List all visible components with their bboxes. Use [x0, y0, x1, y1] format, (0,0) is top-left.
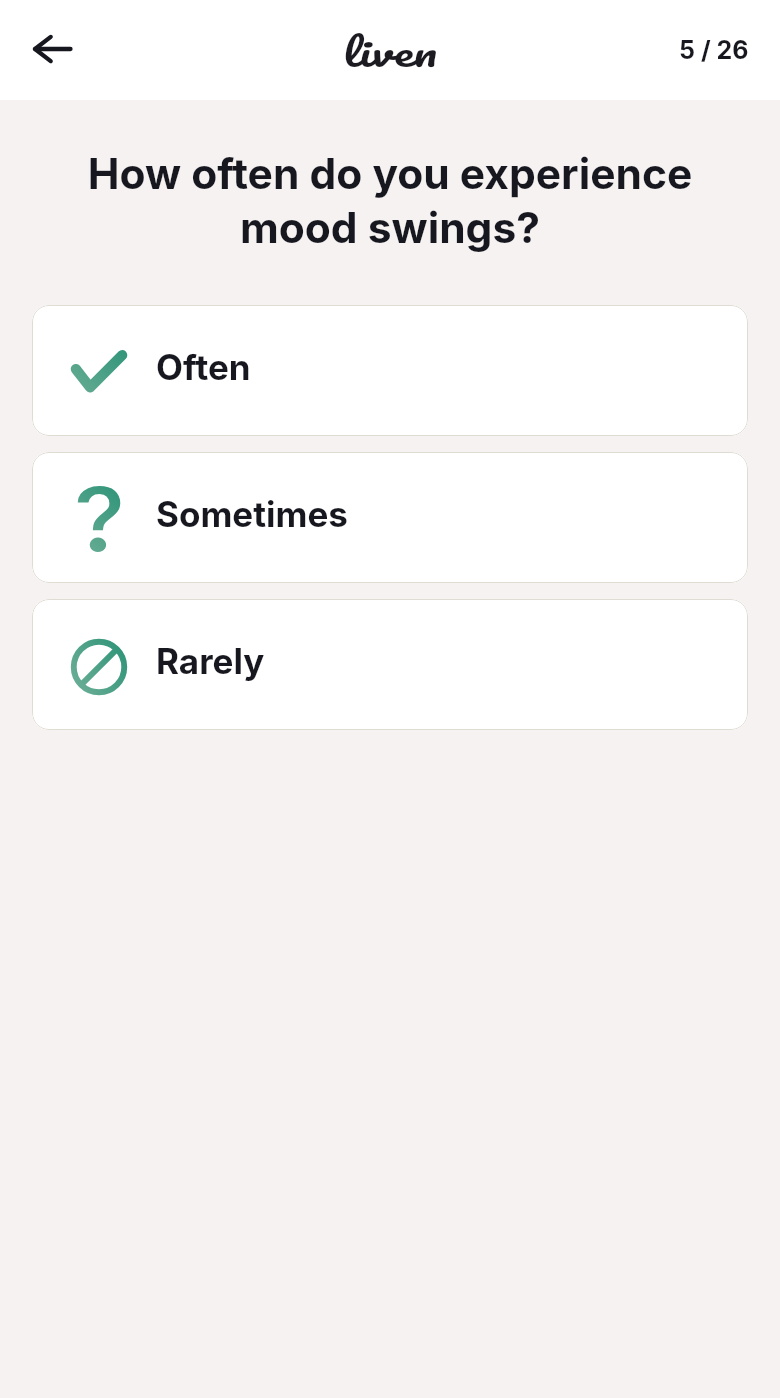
- button[interactable]: Back: [22, 18, 86, 82]
- button[interactable]: Sometimes: [32, 452, 748, 583]
- staticText: Rarely: [156, 640, 265, 682]
- staticText: liven: [343, 20, 438, 84]
- staticText: 5 / 26: [679, 35, 749, 65]
- button[interactable]: Often: [32, 305, 748, 436]
- staticText: Sometimes: [156, 493, 348, 535]
- staticText: Often: [156, 346, 251, 388]
- staticText: How often do you experience mood swings?: [20, 148, 760, 253]
- button[interactable]: Rarely: [32, 599, 748, 730]
